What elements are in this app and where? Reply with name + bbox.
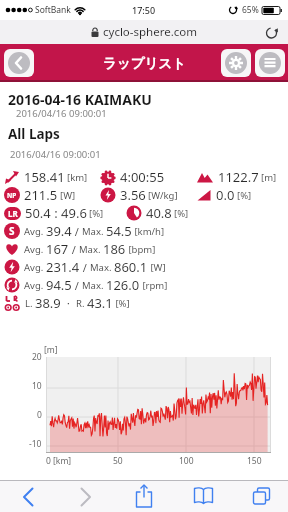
- staticText: 0.0: [216, 186, 235, 204]
- staticText: 65%: [242, 4, 259, 16]
- staticText: 40.8: [146, 204, 172, 222]
- button[interactable]: cyclo-sphere.com: [0, 20, 288, 44]
- staticText: [m]: [261, 171, 277, 184]
- staticText: 231.4: [46, 258, 80, 276]
- staticText: 186: [103, 240, 126, 258]
- staticText: 211.5: [24, 186, 58, 204]
- staticText: NP: [7, 191, 17, 200]
- staticText: Avg.: [24, 279, 46, 292]
- staticText: [bpm]: [126, 243, 156, 256]
- staticText: ・: [61, 297, 76, 310]
- staticText: L.: [25, 297, 35, 310]
- staticText: /: [72, 278, 82, 293]
- staticText: [%]: [113, 297, 130, 310]
- button[interactable]: [192, 485, 215, 507]
- staticText: 860.1: [114, 258, 148, 276]
- staticText: [%]: [237, 189, 252, 202]
- staticText: Max.: [82, 225, 106, 238]
- staticText: 10: [32, 380, 42, 392]
- staticText: 43.1: [87, 294, 113, 312]
- staticText: Avg.: [24, 225, 46, 238]
- staticText: [W/kg]: [148, 189, 178, 202]
- staticText: 20: [32, 351, 42, 363]
- staticText: 50.4 : 49.6: [25, 204, 87, 222]
- button[interactable]: [74, 486, 96, 508]
- staticText: 2016-04-16 KAIMAKU: [8, 90, 152, 109]
- button[interactable]: [265, 26, 278, 39]
- staticText: ラップリスト: [103, 55, 186, 72]
- button[interactable]: [133, 483, 155, 509]
- staticText: 2016/04/16 09:00:01: [10, 148, 101, 161]
- staticText: [km]: [67, 171, 88, 184]
- staticText: LR: [8, 208, 18, 219]
- staticText: 1122.7: [218, 168, 259, 186]
- staticText: /: [72, 224, 82, 239]
- staticText: [W]: [60, 189, 76, 202]
- staticText: 100: [179, 455, 194, 467]
- button[interactable]: [221, 49, 251, 77]
- staticText: SoftBank: [35, 4, 71, 16]
- staticText: 150: [247, 455, 262, 467]
- staticText: [rpm]: [140, 279, 168, 292]
- staticText: 158.41: [24, 168, 65, 186]
- button[interactable]: [250, 485, 273, 507]
- staticText: /: [69, 242, 79, 257]
- staticText: cyclo-sphere.com: [103, 24, 198, 40]
- staticText: [%]: [174, 207, 189, 220]
- staticText: 38.9: [35, 294, 61, 312]
- staticText: Max.: [90, 261, 114, 274]
- staticText: 4:00:55: [120, 168, 165, 186]
- staticText: 0 [km]: [46, 455, 72, 467]
- staticText: 126.0: [106, 276, 140, 294]
- staticText: -10: [29, 438, 42, 450]
- staticText: [km/h]: [132, 225, 165, 238]
- staticText: 2016/04/16 09:00:01: [16, 107, 107, 120]
- staticText: 94.5: [46, 276, 72, 294]
- staticText: [W]: [148, 261, 166, 274]
- staticText: Max.: [79, 243, 103, 256]
- staticText: 39.4: [46, 222, 72, 240]
- staticText: R.: [76, 297, 87, 310]
- staticText: 167: [46, 240, 69, 258]
- staticText: [m]: [44, 344, 58, 356]
- button[interactable]: [18, 486, 40, 508]
- button[interactable]: [4, 49, 34, 77]
- staticText: 54.5: [106, 222, 132, 240]
- staticText: 3.56: [120, 186, 146, 204]
- button[interactable]: [255, 49, 285, 77]
- staticText: 17:50: [132, 4, 156, 16]
- staticText: 50: [113, 455, 123, 467]
- staticText: All Laps: [8, 125, 60, 143]
- staticText: Avg.: [24, 261, 46, 274]
- staticText: 0: [37, 409, 42, 421]
- staticText: S: [9, 224, 15, 238]
- staticText: Max.: [82, 279, 106, 292]
- staticText: [%]: [89, 207, 104, 220]
- staticText: Avg.: [24, 243, 46, 256]
- staticText: /: [80, 260, 90, 275]
